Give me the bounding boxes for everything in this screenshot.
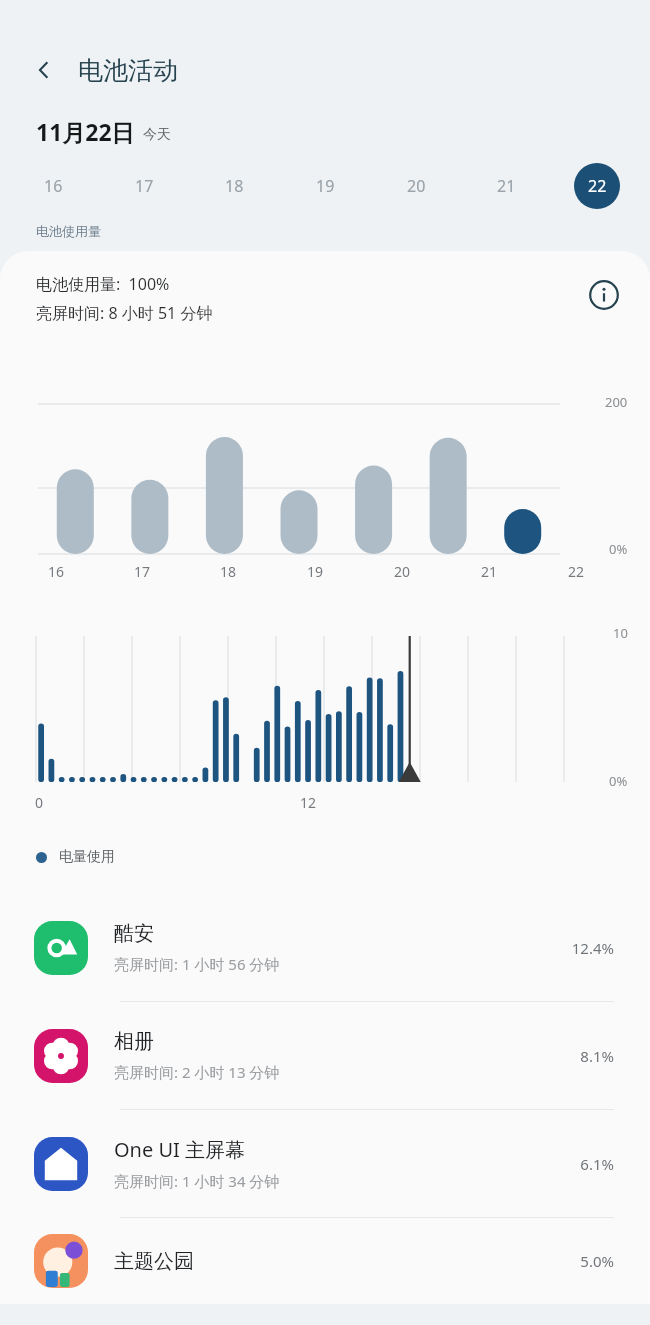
- staticText: 21: [497, 175, 516, 197]
- staticText: 电池使用量: 100%: [36, 273, 170, 295]
- staticText: 200: [605, 393, 628, 411]
- button[interactable]: 21: [483, 163, 529, 209]
- staticText: 10: [613, 624, 628, 642]
- button[interactable]: 22: [574, 163, 620, 209]
- staticText: 酷安: [114, 921, 154, 946]
- staticText: 17: [135, 175, 154, 197]
- staticText: 亮屏时间: 2 小时 13 分钟: [114, 1062, 280, 1082]
- button[interactable]: One UI 主屏幕: [0, 1110, 650, 1218]
- staticText: 8.1%: [580, 1046, 614, 1066]
- button[interactable]: Back: [22, 48, 66, 92]
- button[interactable]: 主题公园: [0, 1218, 650, 1304]
- staticText: 18: [225, 175, 244, 197]
- staticText: 21: [481, 562, 498, 581]
- staticText: 0%: [609, 540, 628, 558]
- staticText: 20: [407, 175, 426, 197]
- button[interactable]: 16: [30, 163, 76, 209]
- staticText: 电量使用: [59, 848, 115, 866]
- staticText: 12: [300, 793, 317, 812]
- staticText: 22: [588, 175, 607, 197]
- staticText: 16: [44, 175, 63, 197]
- staticText: 亮屏时间: 8 小时 51 分钟: [36, 302, 213, 324]
- staticText: 主题公园: [114, 1249, 194, 1274]
- staticText: 19: [307, 562, 324, 581]
- staticText: 相册: [114, 1029, 154, 1054]
- button[interactable]: 18: [211, 163, 257, 209]
- staticText: 22: [568, 562, 585, 581]
- staticText: 今天: [143, 126, 171, 144]
- staticText: One UI 主屏幕: [114, 1136, 246, 1163]
- button[interactable]: 19: [302, 163, 348, 209]
- staticText: 18: [220, 562, 237, 581]
- staticText: 12.4%: [571, 938, 614, 958]
- button[interactable]: 17: [121, 163, 167, 209]
- staticText: 20: [394, 562, 411, 581]
- staticText: 0%: [609, 772, 628, 790]
- button[interactable]: 相册: [0, 1002, 650, 1110]
- button[interactable]: 酷安: [0, 894, 650, 1002]
- staticText: 11月22日: [36, 116, 135, 147]
- button[interactable]: Info: [582, 273, 626, 317]
- staticText: 5.0%: [580, 1251, 614, 1271]
- staticText: 亮屏时间: 1 小时 56 分钟: [114, 954, 280, 974]
- staticText: 17: [134, 562, 151, 581]
- staticText: 16: [48, 562, 65, 581]
- staticText: 亮屏时间: 1 小时 34 分钟: [114, 1171, 280, 1191]
- staticText: 19: [316, 175, 335, 197]
- staticText: 电池使用量: [36, 223, 101, 239]
- staticText: 6.1%: [580, 1154, 614, 1174]
- button[interactable]: 20: [393, 163, 439, 209]
- staticText: 电池活动: [78, 55, 178, 86]
- staticText: 0: [35, 793, 44, 812]
